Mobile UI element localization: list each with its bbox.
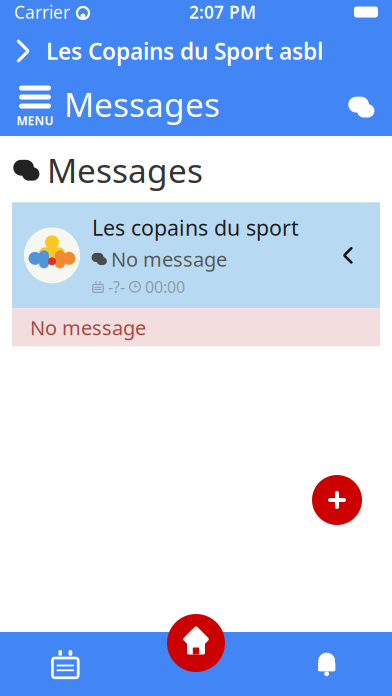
button[interactable]: Home (167, 614, 225, 672)
staticText: Messages (64, 82, 220, 126)
staticText: 00:00 (145, 276, 185, 297)
staticText: 2:07 PM (189, 0, 256, 23)
staticText: Messages (47, 148, 203, 192)
button[interactable]: Add (312, 475, 362, 525)
staticText: MENU (16, 112, 53, 128)
staticText: Les Copains du Sport asbl (46, 36, 323, 66)
button[interactable]: Les copains du sport (12, 202, 380, 308)
button[interactable]: Notifications (261, 632, 392, 696)
staticText: Carrier (14, 0, 70, 23)
button[interactable]: Chat (336, 84, 386, 130)
button[interactable]: Home (131, 632, 261, 696)
button[interactable]: Back (0, 25, 46, 77)
staticText: Les copains du sport (92, 213, 299, 242)
staticText: -?- (108, 276, 125, 297)
button[interactable]: Menu (6, 84, 64, 130)
staticText: No message (111, 246, 227, 272)
button[interactable]: Calendar (0, 632, 131, 696)
staticText: No message (30, 314, 146, 341)
